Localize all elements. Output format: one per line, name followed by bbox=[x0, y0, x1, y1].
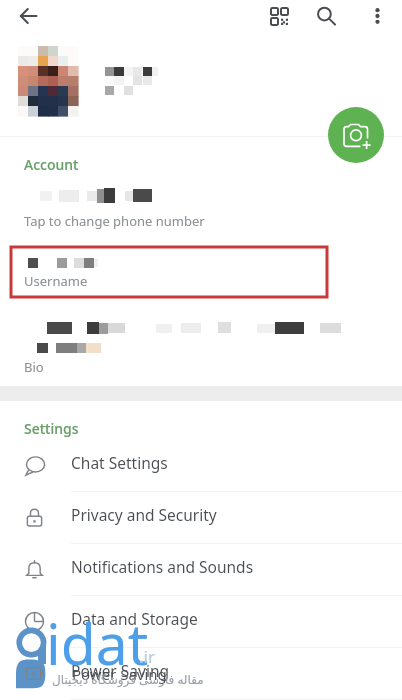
button[interactable]: Notifications and Sounds bbox=[0, 544, 402, 596]
button[interactable] bbox=[0, 42, 402, 134]
button[interactable]: Power Saving bbox=[0, 648, 402, 700]
button[interactable]: Chat Settings bbox=[0, 440, 402, 492]
button[interactable]: Back bbox=[0, 0, 56, 42]
staticText: idat bbox=[46, 604, 149, 682]
staticText: Privacy and Security bbox=[71, 504, 217, 525]
staticText: Bio bbox=[24, 358, 44, 376]
staticText: .ir bbox=[139, 645, 155, 668]
staticText: Username bbox=[24, 272, 88, 290]
button[interactable]: Data and Storage bbox=[0, 596, 402, 648]
staticText: Data and Storage bbox=[71, 608, 198, 629]
staticText: Power Saving bbox=[72, 664, 167, 684]
button[interactable]: Tap to change phone number bbox=[0, 180, 402, 232]
staticText: Account bbox=[24, 155, 79, 174]
staticText: Power Saving bbox=[71, 660, 169, 681]
button[interactable]: Change profile photo bbox=[328, 107, 384, 163]
staticText: Chat Settings bbox=[71, 452, 168, 473]
button[interactable]: Search bbox=[304, 0, 348, 40]
staticText: Tap to change phone number bbox=[24, 212, 205, 230]
staticText: مقاله فارسی فروشگاه دیجیتال bbox=[52, 671, 204, 687]
button[interactable]: Privacy and Security bbox=[0, 492, 402, 544]
button[interactable]: Username bbox=[11, 247, 327, 297]
button[interactable]: More options bbox=[356, 0, 400, 40]
staticText: Settings bbox=[24, 419, 79, 438]
button[interactable]: Bio bbox=[0, 308, 402, 380]
button[interactable]: QR code bbox=[257, 0, 301, 40]
staticText: Notifications and Sounds bbox=[71, 556, 254, 577]
